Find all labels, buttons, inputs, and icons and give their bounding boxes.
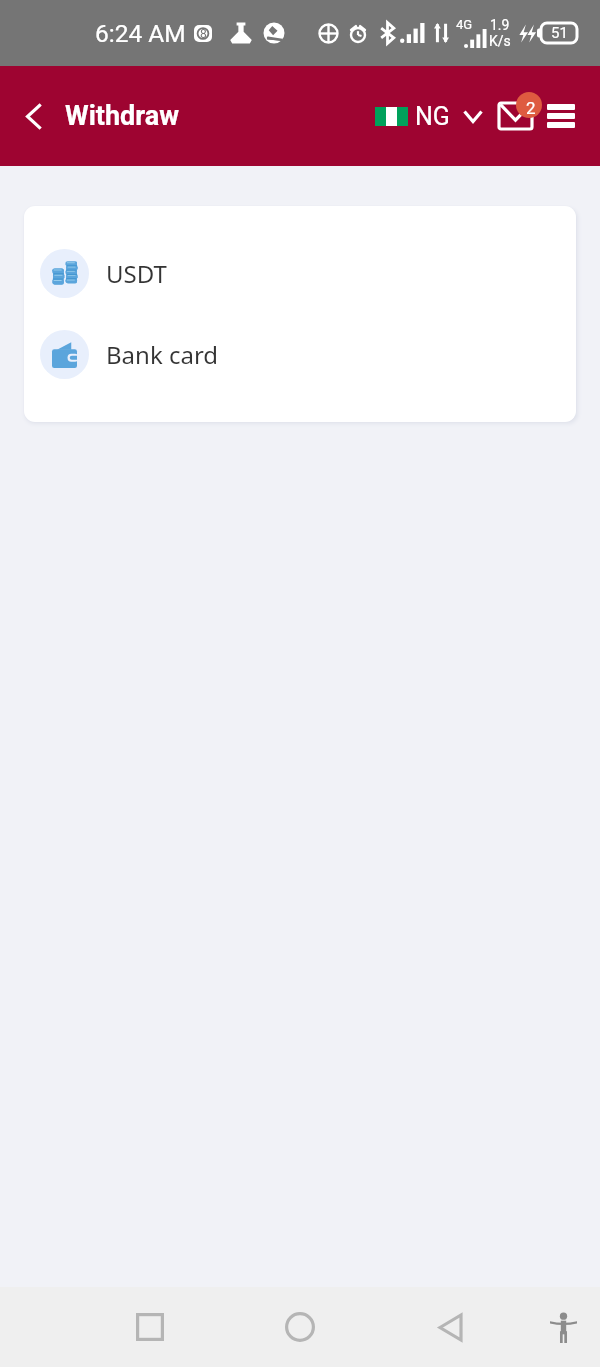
button[interactable]: Messages — [497, 96, 539, 136]
staticText: 51 — [551, 24, 568, 42]
staticText: 6:24 AM — [95, 19, 186, 48]
button[interactable]: USDT — [24, 233, 576, 314]
staticText: Withdraw — [65, 100, 179, 132]
staticText: NG — [415, 102, 450, 131]
staticText: 8 — [200, 27, 207, 41]
button[interactable]: NG — [373, 94, 485, 139]
staticText: K/s — [489, 33, 511, 49]
staticText: USDT — [106, 257, 167, 290]
staticText: Bank card — [106, 338, 219, 371]
staticText: 2 — [526, 98, 536, 118]
button[interactable]: Menu — [539, 96, 583, 136]
button[interactable]: Home — [272, 1299, 328, 1355]
button[interactable]: Recent apps — [122, 1299, 178, 1355]
button[interactable]: Accessibility — [535, 1299, 591, 1355]
button[interactable]: Bank card — [24, 314, 576, 395]
button[interactable]: Back — [13, 96, 53, 136]
staticText: 1.9 — [490, 17, 510, 33]
button[interactable]: Back — [422, 1299, 478, 1355]
staticText: 4G — [456, 17, 473, 32]
